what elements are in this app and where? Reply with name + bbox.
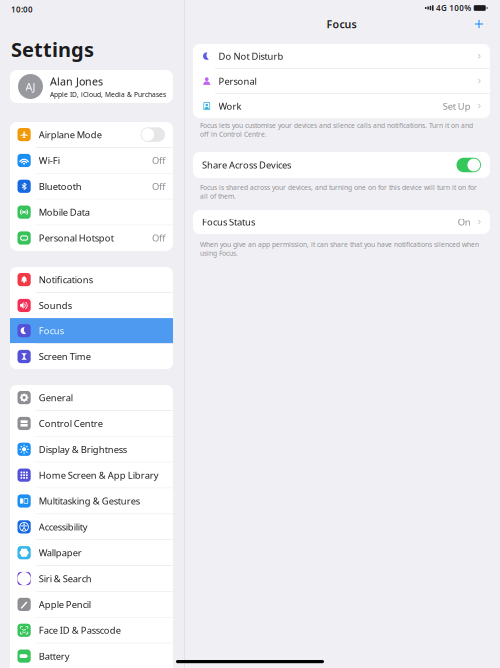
staticText: General [39, 391, 73, 404]
staticText: Notifications [39, 273, 93, 286]
staticText: Screen Time [39, 350, 91, 363]
button[interactable]: Personal [193, 69, 490, 93]
button[interactable]: Notifications [10, 267, 173, 292]
staticText: Wi-Fi [39, 154, 60, 167]
staticText: Personal Hotspot [39, 232, 114, 244]
button[interactable]: Face ID & Passcode [10, 618, 173, 643]
button[interactable]: Control Centre [10, 411, 173, 436]
staticText: Display & Brightness [39, 443, 127, 455]
button[interactable]: Accessibility [10, 514, 173, 539]
button[interactable]: AJ [10, 70, 173, 103]
button[interactable]: Do Not Disturb [193, 44, 490, 68]
staticText: Alan Jones [50, 74, 103, 88]
staticText: 10:00 [11, 4, 33, 15]
staticText: Sounds [39, 299, 72, 312]
staticText: Focus [326, 17, 356, 31]
button[interactable]: Work [193, 94, 490, 118]
staticText: Work [218, 100, 241, 112]
staticText: Do Not Disturb [218, 50, 283, 62]
button[interactable]: Apple Pencil [10, 592, 173, 617]
staticText: Airplane Mode [39, 128, 102, 141]
button[interactable]: Personal Hotspot [10, 225, 173, 251]
button[interactable]: Multitasking & Gestures [10, 488, 173, 514]
staticText: Off [152, 232, 165, 244]
staticText: Control Centre [39, 417, 103, 430]
button[interactable]: Bluetooth [10, 174, 173, 199]
staticText: Off [152, 180, 165, 192]
button[interactable]: Display & Brightness [10, 437, 173, 462]
staticText: Battery [39, 650, 70, 662]
staticText: When you give an app permission, it can … [200, 240, 479, 258]
staticText: Siri & Search [39, 572, 92, 585]
staticText: Settings [11, 36, 94, 63]
staticText: Focus [39, 324, 64, 337]
staticText: Focus Status [202, 216, 255, 228]
button[interactable]: Home Screen & App Library [10, 463, 173, 488]
button[interactable]: Battery [10, 643, 173, 668]
button[interactable]: Siri & Search [10, 566, 173, 591]
staticText: Apple ID, iCloud, Media & Purchases [50, 90, 166, 99]
button[interactable]: Sounds [10, 293, 173, 318]
staticText: 100% [449, 3, 471, 13]
button[interactable]: General [10, 385, 173, 410]
staticText: 4G [436, 3, 447, 13]
staticText: Wallpaper [39, 546, 82, 559]
staticText: Share Across Devices [202, 159, 291, 171]
staticText: Focus lets you customise your devices an… [200, 121, 473, 139]
staticText: Off [152, 154, 165, 167]
staticText: Accessibility [39, 521, 88, 533]
staticText: On [458, 216, 471, 228]
button[interactable]: Focus Status [193, 210, 490, 234]
button[interactable]: Airplane Mode [10, 122, 173, 147]
button[interactable]: Focus [10, 318, 173, 343]
staticText: Mobile Data [39, 206, 90, 218]
staticText: Personal [218, 75, 256, 87]
staticText: Home Screen & App Library [39, 469, 159, 481]
staticText: Bluetooth [39, 180, 82, 192]
staticText: Apple Pencil [39, 598, 91, 611]
button[interactable]: Mobile Data [10, 200, 173, 225]
staticText: Face ID & Passcode [39, 624, 121, 636]
button[interactable]: Screen Time [10, 344, 173, 369]
staticText: Focus is shared across your devices, and… [200, 183, 477, 201]
button[interactable]: Add Focus [470, 15, 488, 33]
button[interactable]: Share Across Devices [456, 158, 481, 172]
staticText: AJ [25, 79, 35, 94]
staticText: Multitasking & Gestures [39, 495, 140, 507]
staticText: Set Up [443, 100, 471, 112]
button[interactable]: Wallpaper [10, 540, 173, 565]
button[interactable]: Wi-Fi [10, 148, 173, 173]
